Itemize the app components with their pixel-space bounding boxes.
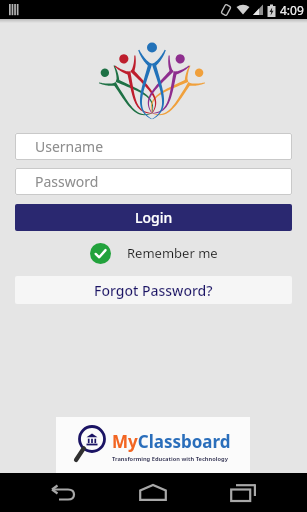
- button[interactable]: Login: [15, 204, 292, 231]
- staticText: MyClassboard: [112, 430, 231, 453]
- staticText: Login: [135, 208, 173, 227]
- staticText: Username: [35, 137, 104, 156]
- button[interactable]: [221, 473, 265, 512]
- button[interactable]: Username: [15, 133, 292, 160]
- staticText: Forgot Password?: [94, 281, 213, 300]
- button[interactable]: Password: [15, 168, 292, 195]
- staticText: 4:09: [280, 2, 304, 18]
- staticText: Password: [35, 172, 99, 191]
- staticText: Remember me: [127, 244, 218, 262]
- button[interactable]: Forgot Password?: [15, 276, 292, 304]
- staticText: Transforming Education with Technology: [112, 455, 228, 463]
- button[interactable]: [41, 473, 85, 512]
- button[interactable]: Remember me: [0, 242, 307, 264]
- button[interactable]: [131, 473, 175, 512]
